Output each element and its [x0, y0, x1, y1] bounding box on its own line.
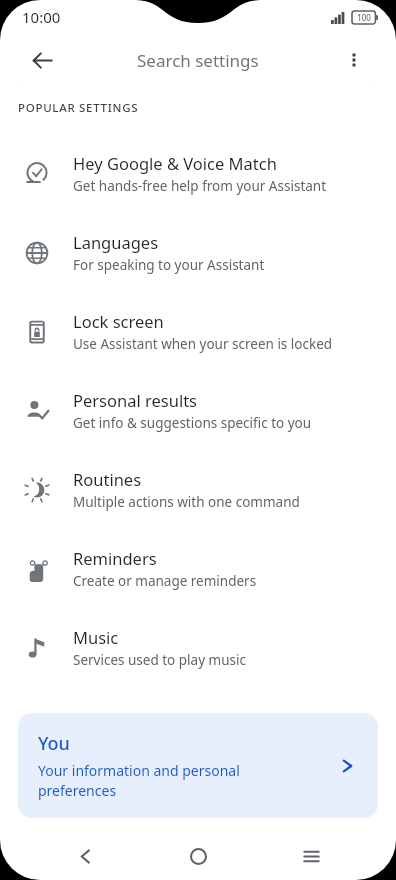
button[interactable]: Back [16, 34, 380, 86]
staticText: Get info & suggestions specific to you [73, 414, 312, 432]
button[interactable]: Lock screen [0, 292, 396, 371]
staticText: Reminders [73, 547, 157, 569]
staticText: Personal results [73, 389, 197, 411]
staticText: Create or manage reminders [73, 572, 257, 590]
staticText: 100 [357, 12, 371, 23]
staticText: You [38, 731, 70, 756]
button[interactable]: Languages [0, 213, 396, 292]
button[interactable]: Music [0, 608, 396, 687]
button[interactable]: Routines [0, 450, 396, 529]
staticText: Lock screen [73, 310, 164, 332]
button[interactable]: Home [170, 832, 226, 880]
button[interactable]: Hey Google & Voice Match [0, 134, 396, 213]
button[interactable]: Back [57, 832, 113, 880]
button[interactable]: You [18, 713, 378, 818]
staticText: Get hands-free help from your Assistant [73, 177, 327, 195]
button[interactable]: Reminders [0, 529, 396, 608]
button[interactable]: More options [328, 34, 380, 86]
staticText: Hey Google & Voice Match [73, 152, 277, 174]
staticText: Use Assistant when your screen is locked [73, 335, 333, 353]
button[interactable]: Recent apps [283, 832, 339, 880]
staticText: Multiple actions with one command [73, 493, 300, 511]
staticText: Music [73, 626, 119, 648]
staticText: Search settings [137, 49, 259, 72]
staticText: Languages [73, 231, 159, 253]
button[interactable]: Personal results [0, 371, 396, 450]
staticText: Routines [73, 468, 142, 490]
staticText: POPULAR SETTINGS [18, 100, 139, 116]
staticText: Services used to play music [73, 651, 246, 669]
button[interactable]: Back [16, 34, 68, 86]
staticText: For speaking to your Assistant [73, 256, 265, 274]
staticText: 10:00 [22, 7, 61, 27]
staticText: Your information and personal preference… [38, 761, 240, 800]
